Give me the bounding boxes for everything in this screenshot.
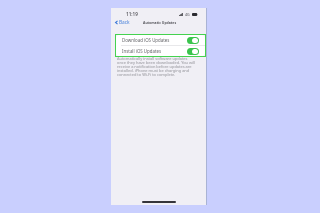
button[interactable]: Toggle on: [187, 48, 199, 55]
staticText: Install iOS Updates: [122, 48, 162, 54]
button[interactable]: Toggle on: [187, 37, 199, 44]
staticText: Back: [119, 19, 130, 26]
staticText: Download iOS Updates: [122, 37, 170, 43]
button[interactable]: Install iOS Updates: [116, 46, 205, 56]
staticText: Automatically install software updates o…: [117, 56, 196, 77]
button[interactable]: Back: [114, 18, 131, 27]
staticText: Automatic Updates: [143, 20, 177, 25]
button[interactable]: Download iOS Updates: [116, 35, 205, 45]
staticText: 11:19: [126, 11, 138, 17]
staticText: 4G: [185, 12, 190, 17]
